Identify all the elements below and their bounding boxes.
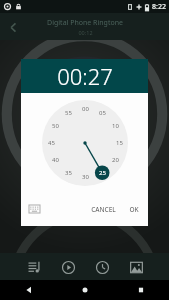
staticText: 25 [99, 169, 106, 177]
button[interactable]: Home [57, 280, 113, 300]
button[interactable]: Gallery [126, 257, 146, 277]
button[interactable]: 00:27 [21, 59, 148, 93]
button[interactable]: Back [0, 14, 26, 40]
staticText: 00 [82, 105, 89, 113]
staticText: OK [129, 205, 139, 214]
button[interactable]: CANCEL [87, 200, 120, 219]
staticText: 10 [112, 122, 119, 130]
staticText: 8:22 [152, 2, 166, 12]
staticText: 15 [116, 139, 123, 147]
staticText: 00:27 [57, 61, 113, 91]
button[interactable]: Recents [113, 280, 169, 300]
staticText: 00:12 [78, 29, 93, 36]
button[interactable]: Play [58, 257, 78, 277]
button[interactable]: Timer [92, 257, 112, 277]
button[interactable]: Keyboard input [26, 201, 42, 217]
button[interactable]: Back [0, 280, 57, 300]
button[interactable]: Playlist [24, 257, 44, 277]
button[interactable]: Minute clock face [42, 100, 128, 186]
staticText: 45 [48, 139, 55, 147]
staticText: 55 [65, 109, 72, 117]
button[interactable]: OK [125, 200, 143, 219]
staticText: 20 [112, 156, 119, 164]
staticText: 05 [99, 109, 106, 117]
staticText: 50 [52, 122, 59, 130]
staticText: 35 [65, 169, 72, 177]
staticText: 30 [82, 173, 89, 181]
staticText: Digital Phone Ringtone [47, 18, 123, 28]
staticText: 40 [52, 156, 59, 164]
staticText: CANCEL [91, 205, 116, 214]
